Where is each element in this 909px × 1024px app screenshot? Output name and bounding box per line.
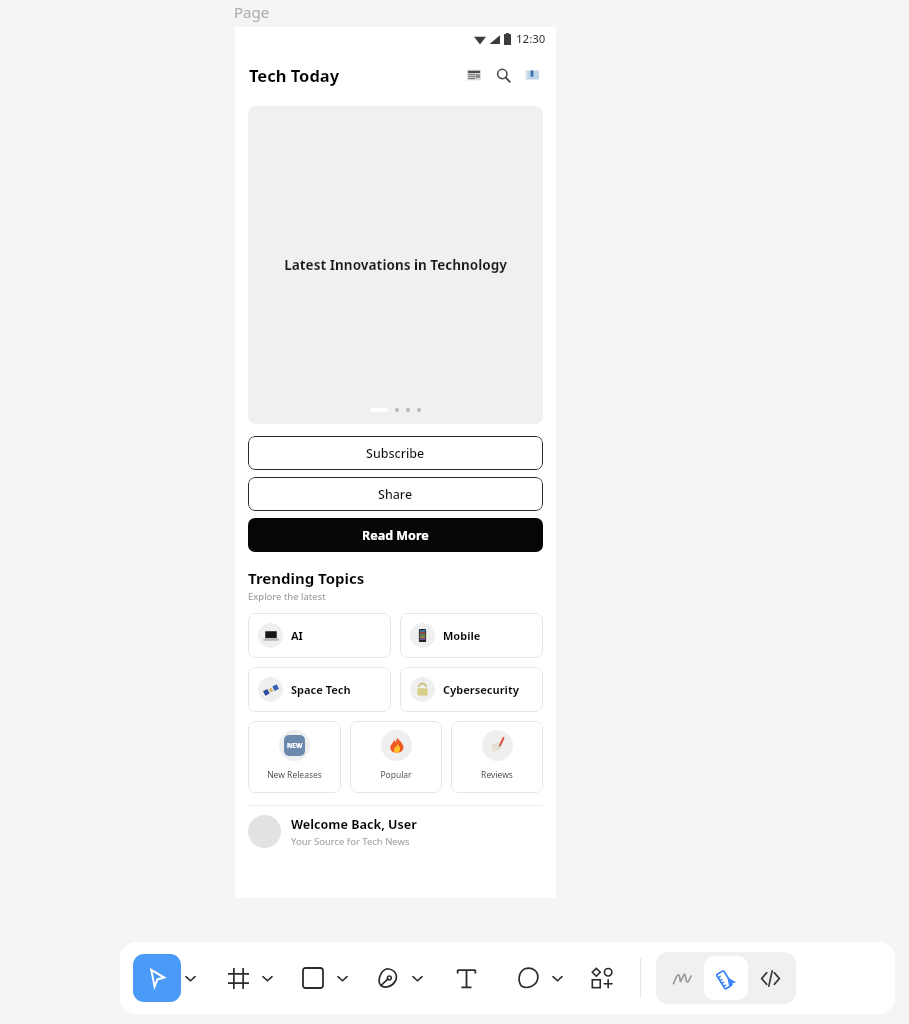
button[interactable]: Bookmarks <box>520 63 544 87</box>
button[interactable]: Space Tech <box>248 667 391 712</box>
button[interactable]: Read More <box>248 518 543 552</box>
button[interactable]: Share <box>248 477 543 511</box>
button[interactable]: Select tool <box>133 954 181 1002</box>
button[interactable]: Welcome Back, User <box>248 815 543 848</box>
button[interactable]: Mobile <box>400 613 543 658</box>
button[interactable]: Comment tool <box>508 958 548 998</box>
button[interactable]: Scribble <box>660 956 704 1000</box>
staticText: Welcome Back, User <box>291 816 417 833</box>
staticText: Trending Topics <box>248 568 365 588</box>
staticText: Share <box>378 486 413 503</box>
button[interactable]: Rectangle tool <box>293 958 333 998</box>
button[interactable]: News <box>462 63 486 87</box>
staticText: Reviews <box>481 769 513 781</box>
button[interactable]: More options <box>548 969 566 987</box>
button[interactable]: Reviews <box>451 721 543 793</box>
button[interactable]: Subscribe <box>248 436 543 470</box>
staticText: Your Source for Tech News <box>291 835 410 848</box>
button[interactable]: AI <box>248 613 391 658</box>
button[interactable]: More options <box>333 969 351 987</box>
button[interactable]: Cybersecurity <box>400 667 543 712</box>
staticText: Space Tech <box>291 682 351 697</box>
button[interactable]: Text tool <box>446 958 486 998</box>
button[interactable]: Popular <box>350 721 442 793</box>
button[interactable]: Frame tool <box>218 958 258 998</box>
staticText: Read More <box>362 527 429 544</box>
staticText: Explore the latest <box>248 590 326 603</box>
button[interactable]: Search <box>491 63 515 87</box>
staticText: AI <box>291 628 303 643</box>
staticText: Mobile <box>443 628 481 643</box>
staticText: Popular <box>380 769 412 781</box>
staticText: Cybersecurity <box>443 682 519 697</box>
button[interactable]: NEW <box>248 721 341 793</box>
button[interactable]: More options <box>181 969 199 987</box>
button[interactable]: Code <box>748 956 792 1000</box>
staticText: New Releases <box>267 769 322 781</box>
button[interactable]: Latest Innovations in Technology <box>248 106 543 424</box>
staticText: Page <box>234 2 270 22</box>
button[interactable]: More options <box>408 969 426 987</box>
button[interactable]: Dev mode <box>704 956 748 1000</box>
staticText: 12:30 <box>516 31 546 47</box>
staticText: NEW <box>287 741 303 750</box>
button[interactable]: More options <box>258 969 276 987</box>
staticText: Subscribe <box>366 445 425 462</box>
button[interactable]: Components <box>582 958 622 998</box>
staticText: Latest Innovations in Technology <box>284 256 507 274</box>
button[interactable]: Pen tool <box>368 958 408 998</box>
staticText: Tech Today <box>249 64 340 86</box>
